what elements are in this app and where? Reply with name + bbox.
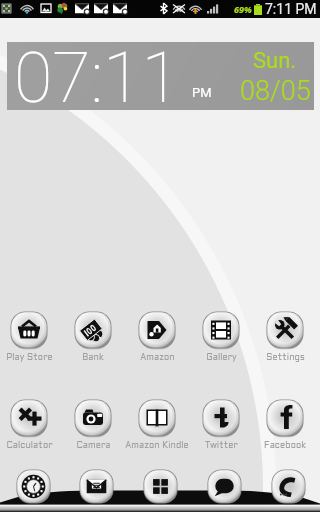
button[interactable]: Bank	[61, 311, 125, 362]
button[interactable]: Gallery	[189, 311, 253, 362]
staticText: Twitter	[205, 442, 238, 450]
staticText: 69%	[234, 3, 252, 15]
button[interactable]: Clock	[16, 469, 51, 504]
staticText: Calculator	[6, 442, 53, 450]
staticText: Gallery	[206, 354, 237, 362]
button[interactable]: Phone	[271, 469, 306, 504]
button[interactable]: Messaging	[79, 469, 114, 504]
staticText: 07:11	[14, 37, 180, 105]
staticText: Play Store	[6, 354, 53, 362]
button[interactable]: Twitter	[189, 399, 253, 450]
button[interactable]: All apps	[143, 469, 178, 504]
button[interactable]: Settings	[253, 311, 317, 362]
staticText: Amazon	[140, 354, 175, 362]
staticText: Bank	[82, 354, 104, 362]
button[interactable]: Calculator	[0, 399, 61, 450]
staticText: Sun.	[253, 48, 297, 74]
staticText: Settings	[266, 354, 305, 362]
button[interactable]: Camera	[61, 399, 125, 450]
staticText: Camera	[76, 442, 111, 450]
staticText: Facebook	[264, 442, 306, 450]
button[interactable]: Amazon Kindle	[125, 399, 189, 450]
button[interactable]: Search	[207, 469, 242, 504]
staticText: 7:11 PM	[265, 1, 317, 17]
staticText: Amazon Kindle	[125, 442, 189, 450]
staticText: PM	[192, 85, 212, 100]
button[interactable]: Play Store	[0, 311, 61, 362]
staticText: 08/05	[240, 75, 311, 107]
button[interactable]: Amazon	[125, 311, 189, 362]
button[interactable]: Facebook	[253, 399, 317, 450]
